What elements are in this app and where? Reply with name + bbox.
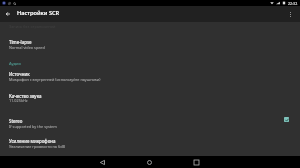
- staticText: Усиление микрофона: [9, 138, 56, 144]
- button[interactable]: Home: [143, 156, 156, 168]
- staticText: Normal video speed: [9, 45, 45, 50]
- staticText: Микрофон с внутренней (используйте наушн…: [9, 77, 101, 82]
- staticText: Источник: [9, 71, 30, 77]
- button[interactable]: Time-lapse: [0, 34, 300, 54]
- staticText: 22:32: [288, 1, 298, 6]
- button[interactable]: More options: [283, 6, 297, 22]
- button[interactable]: Back: [96, 156, 109, 168]
- button[interactable]: Качество звука: [0, 87, 300, 108]
- staticText: 11.025kHz: [9, 98, 28, 103]
- button[interactable]: Источник: [0, 65, 300, 85]
- staticText: Увеличение громкости на 6dB: [9, 144, 65, 149]
- staticText: Настройки SCR: [17, 9, 60, 17]
- button[interactable]: Recent apps: [190, 156, 203, 168]
- staticText: Time-lapse: [9, 39, 32, 45]
- staticText: If supported by the system: [9, 124, 57, 129]
- staticText: Аудио: [9, 61, 21, 66]
- button[interactable]: Stereo: [0, 112, 300, 133]
- other: Stereo checkbox: [284, 117, 289, 122]
- button[interactable]: Back: [0, 6, 17, 22]
- button[interactable]: Усиление микрофона: [0, 133, 300, 153]
- staticText: Качество звука: [9, 93, 42, 99]
- staticText: Stereo: [9, 118, 23, 124]
